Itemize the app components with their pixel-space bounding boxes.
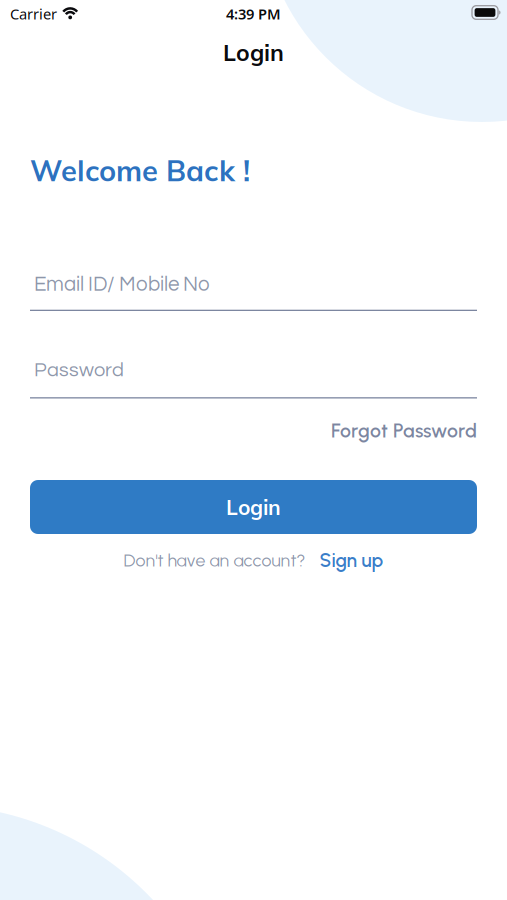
staticText: Don't have an account?: [123, 550, 305, 571]
staticText: Password: [34, 360, 124, 380]
button[interactable]: Login: [30, 480, 477, 534]
button[interactable]: Email ID/ Mobile No: [30, 265, 477, 311]
staticText: Welcome Back !: [30, 152, 250, 188]
staticText: 4:39 PM: [226, 4, 281, 23]
button[interactable]: Forgot Password: [331, 419, 477, 442]
button[interactable]: Sign up: [319, 549, 383, 572]
button[interactable]: Password: [30, 352, 477, 398]
staticText: Carrier: [10, 4, 57, 23]
staticText: Sign up: [319, 549, 383, 572]
staticText: Login: [223, 38, 284, 67]
staticText: Forgot Password: [331, 419, 477, 442]
staticText: Email ID/ Mobile No: [34, 274, 210, 295]
staticText: Login: [226, 494, 281, 520]
